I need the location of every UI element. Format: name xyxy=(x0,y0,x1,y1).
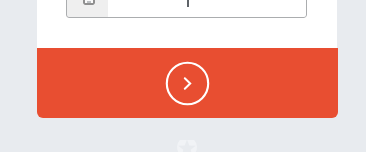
button[interactable]: Continue xyxy=(165,61,210,106)
button[interactable]: Continue xyxy=(37,48,338,118)
button[interactable] xyxy=(66,0,307,18)
